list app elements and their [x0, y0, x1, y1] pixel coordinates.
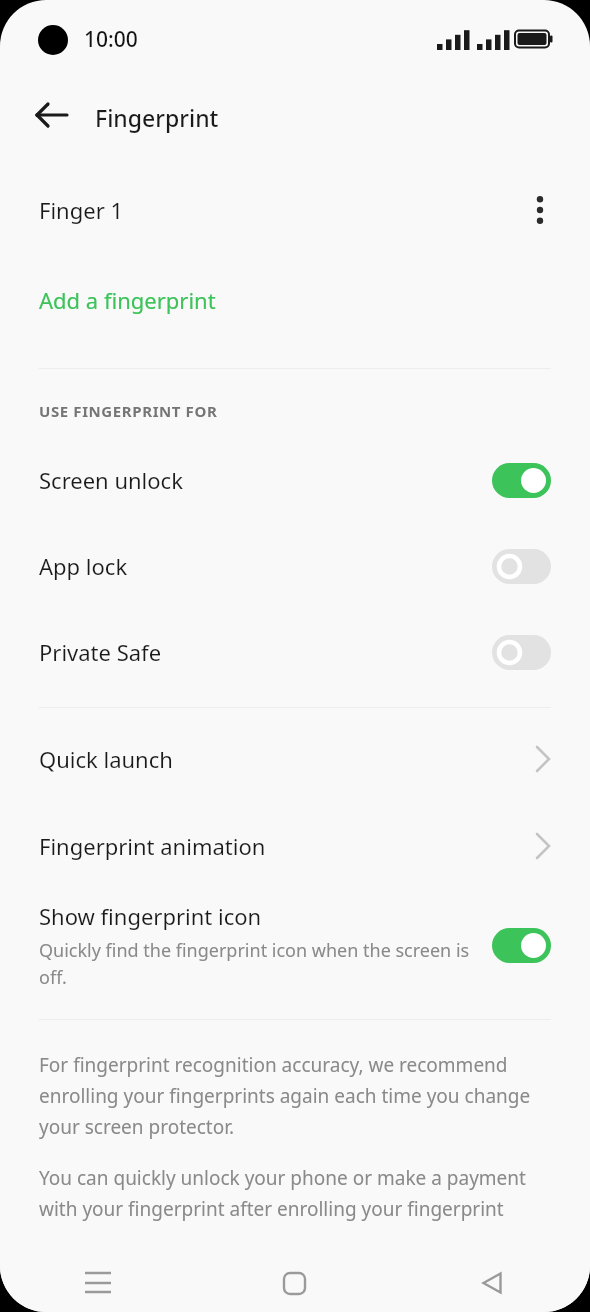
button[interactable]: On — [492, 463, 551, 498]
staticText: Quick launch — [39, 744, 173, 774]
button[interactable]: Add a fingerprint — [0, 280, 590, 320]
staticText: Fingerprint — [95, 102, 219, 133]
staticText: Fingerprint animation — [39, 831, 266, 861]
button[interactable]: Off — [492, 549, 551, 584]
button[interactable]: App lock — [0, 543, 590, 589]
button[interactable]: Home — [196, 1254, 393, 1312]
staticText: Show fingerprint icon — [39, 901, 262, 931]
staticText: App lock — [39, 551, 128, 581]
button[interactable]: Show fingerprint icon — [0, 895, 590, 995]
staticText: You can quickly unlock your phone or mak… — [39, 1165, 556, 1222]
staticText: For fingerprint recognition accuracy, we… — [39, 1052, 556, 1140]
button[interactable]: Back — [22, 85, 82, 145]
staticText: USE FINGERPRINT FOR — [39, 401, 218, 421]
button[interactable]: Finger 1 — [0, 182, 590, 238]
staticText: 10:00 — [84, 25, 138, 54]
button[interactable]: Off — [492, 635, 551, 670]
button[interactable]: Fingerprint animation — [0, 823, 590, 869]
button[interactable]: Back — [393, 1254, 590, 1312]
staticText: Quickly find the fingerprint icon when t… — [39, 938, 476, 989]
button[interactable]: Recent apps — [0, 1254, 196, 1312]
button[interactable]: Screen unlock — [0, 457, 590, 503]
button[interactable]: Quick launch — [0, 736, 590, 782]
staticText: Private Safe — [39, 637, 162, 667]
button[interactable]: On — [492, 928, 551, 963]
staticText: Screen unlock — [39, 465, 183, 495]
button[interactable]: Private Safe — [0, 629, 590, 675]
staticText: Finger 1 — [39, 195, 124, 225]
staticText: Add a fingerprint — [39, 285, 216, 315]
button[interactable]: More options — [512, 182, 568, 238]
